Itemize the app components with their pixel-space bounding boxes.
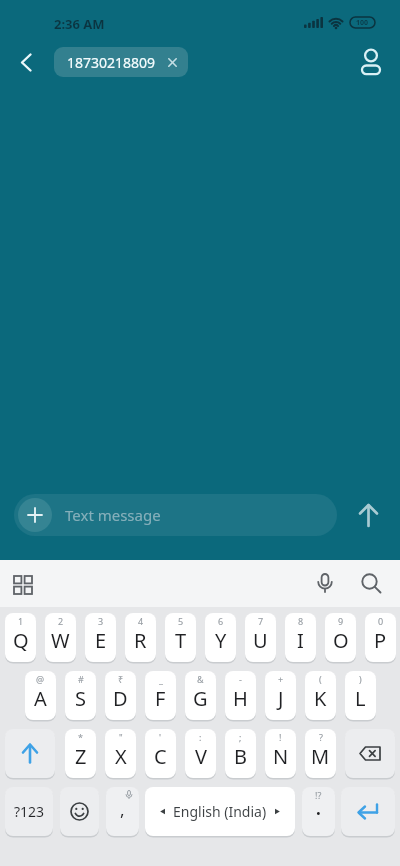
staticText: ' xyxy=(159,731,162,743)
staticText: !? xyxy=(315,789,322,801)
staticText: I xyxy=(297,627,304,654)
button[interactable]: Q xyxy=(5,613,36,662)
staticText: ₹ xyxy=(118,673,124,685)
staticText: # xyxy=(78,673,84,685)
button[interactable] xyxy=(60,787,99,836)
staticText: U xyxy=(253,627,268,654)
button[interactable]: I xyxy=(285,613,316,662)
staticText: 1 xyxy=(18,615,24,627)
button[interactable]: V xyxy=(185,729,216,778)
button[interactable]: E xyxy=(85,613,116,662)
button[interactable]: R xyxy=(125,613,156,662)
staticText: L xyxy=(355,685,366,712)
staticText: ) xyxy=(359,673,362,685)
staticText: S xyxy=(75,685,86,712)
staticText: E xyxy=(95,627,107,654)
staticText: T xyxy=(175,627,187,654)
staticText: Text message xyxy=(65,505,161,525)
button[interactable]: C xyxy=(145,729,176,778)
button[interactable]: M xyxy=(305,729,336,778)
staticText: 5 xyxy=(178,615,184,627)
staticText: ?123 xyxy=(14,802,45,821)
staticText: 8 xyxy=(298,615,304,627)
staticText: 4 xyxy=(138,615,144,627)
button[interactable]: ?123 xyxy=(5,787,53,836)
button[interactable]: P xyxy=(365,613,396,662)
staticText: Q xyxy=(13,627,29,654)
button[interactable] xyxy=(345,729,395,778)
button[interactable] xyxy=(354,567,388,601)
button[interactable]: H xyxy=(225,671,256,720)
staticText: + xyxy=(278,673,284,685)
staticText: H xyxy=(233,685,248,712)
button[interactable]: L xyxy=(345,671,376,720)
staticText: 100 xyxy=(356,18,369,28)
button[interactable] xyxy=(353,44,389,80)
staticText: _ xyxy=(159,673,163,685)
staticText: J xyxy=(278,685,284,712)
staticText: ; xyxy=(239,731,242,743)
staticText: O xyxy=(333,627,349,654)
button[interactable]: , xyxy=(106,787,139,836)
staticText: 6 xyxy=(218,615,224,627)
button[interactable]: Y xyxy=(205,613,236,662)
staticText: M xyxy=(311,743,330,770)
button[interactable]: S xyxy=(65,671,96,720)
button[interactable]: T xyxy=(165,613,196,662)
staticText: . xyxy=(316,797,321,820)
button[interactable]: K xyxy=(305,671,336,720)
staticText: V xyxy=(195,743,207,770)
button[interactable]: W xyxy=(45,613,76,662)
staticText: D xyxy=(113,685,128,712)
staticText: K xyxy=(314,685,327,712)
button[interactable]: D xyxy=(105,671,136,720)
staticText: , xyxy=(120,798,125,821)
staticText: A xyxy=(34,685,47,712)
staticText: N xyxy=(273,743,289,770)
button[interactable] xyxy=(6,568,40,602)
button[interactable] xyxy=(5,729,55,778)
button[interactable]: G xyxy=(185,671,216,720)
staticText: 2:36 AM xyxy=(54,15,105,33)
button[interactable] xyxy=(308,567,342,601)
staticText: 7 xyxy=(258,615,264,627)
button[interactable]: 18730218809 xyxy=(54,47,188,77)
staticText: 9 xyxy=(338,615,344,627)
button[interactable]: J xyxy=(265,671,296,720)
staticText: G xyxy=(193,685,208,712)
staticText: ( xyxy=(319,673,322,685)
button[interactable]: Z xyxy=(65,729,96,778)
button[interactable] xyxy=(341,787,395,836)
staticText: F xyxy=(155,685,166,712)
staticText: 2 xyxy=(58,615,64,627)
staticText: & xyxy=(197,673,204,685)
button[interactable]: Text message xyxy=(14,494,337,536)
staticText: * xyxy=(78,731,83,743)
staticText: R xyxy=(134,627,147,654)
staticText: Z xyxy=(75,743,87,770)
button[interactable]: A xyxy=(25,671,56,720)
staticText: 3 xyxy=(98,615,104,627)
button[interactable]: . xyxy=(302,787,335,836)
button[interactable] xyxy=(346,493,390,537)
button[interactable]: N xyxy=(265,729,296,778)
button[interactable]: U xyxy=(245,613,276,662)
staticText: C xyxy=(154,743,167,770)
staticText: ? xyxy=(319,731,323,743)
staticText: - xyxy=(239,673,242,685)
button[interactable]: X xyxy=(105,729,136,778)
button[interactable]: O xyxy=(325,613,356,662)
staticText: W xyxy=(51,627,70,654)
staticText: 18730218809 xyxy=(67,53,156,72)
button[interactable]: F xyxy=(145,671,176,720)
staticText: @ xyxy=(36,673,45,685)
staticText: Y xyxy=(215,627,227,654)
button[interactable] xyxy=(18,498,52,532)
staticText: " xyxy=(119,731,123,743)
button[interactable]: English (India) xyxy=(145,787,295,836)
button[interactable]: B xyxy=(225,729,256,778)
button[interactable] xyxy=(8,46,44,82)
staticText: X xyxy=(115,743,127,770)
staticText: : xyxy=(199,731,202,743)
staticText: P xyxy=(374,627,387,654)
